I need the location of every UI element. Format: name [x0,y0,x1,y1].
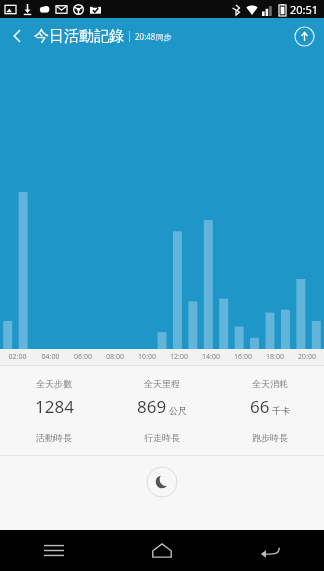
staticText: 18:00 [259,352,291,362]
staticText: 行走時長 [144,432,180,443]
staticText: 20:00 [291,352,323,362]
button[interactable]: Sync [292,24,316,48]
staticText: 今日活動記錄 [34,27,124,46]
button[interactable]: 全天消耗 [216,378,324,418]
staticText: 公尺 [169,405,187,416]
staticText: 活動時長 [36,432,72,443]
staticText: 16:00 [227,352,259,362]
button[interactable]: Home [108,530,216,571]
staticText: 20:48同步 [135,31,172,42]
button[interactable]: Back [216,530,324,571]
staticText: 08:00 [99,352,131,362]
button[interactable]: 行走時長 [108,432,216,443]
staticText: 14:00 [195,352,227,362]
staticText: 千卡 [272,405,290,416]
staticText: 跑步時長 [252,432,288,443]
staticText: 全天里程 [144,378,180,389]
button[interactable]: 全天步數 [0,378,108,418]
staticText: 12:00 [163,352,195,362]
staticText: 全天步數 [36,378,72,389]
staticText: 06:00 [67,352,99,362]
staticText: 04:00 [34,352,67,362]
staticText: 全天消耗 [252,378,288,389]
button[interactable]: Back [0,19,34,53]
button[interactable]: 活動時長 [0,432,108,443]
button[interactable]: Menu [0,530,108,571]
staticText: 1284 [35,395,74,418]
staticText: 20:51 [290,2,319,17]
staticText: 66 [250,395,270,418]
staticText: 02:00 [1,352,34,362]
button[interactable]: 跑步時長 [216,432,324,443]
staticText: 869 [137,395,167,418]
button[interactable]: Sleep [145,465,179,499]
button[interactable]: 全天里程 [108,378,216,418]
staticText: 10:00 [131,352,163,362]
